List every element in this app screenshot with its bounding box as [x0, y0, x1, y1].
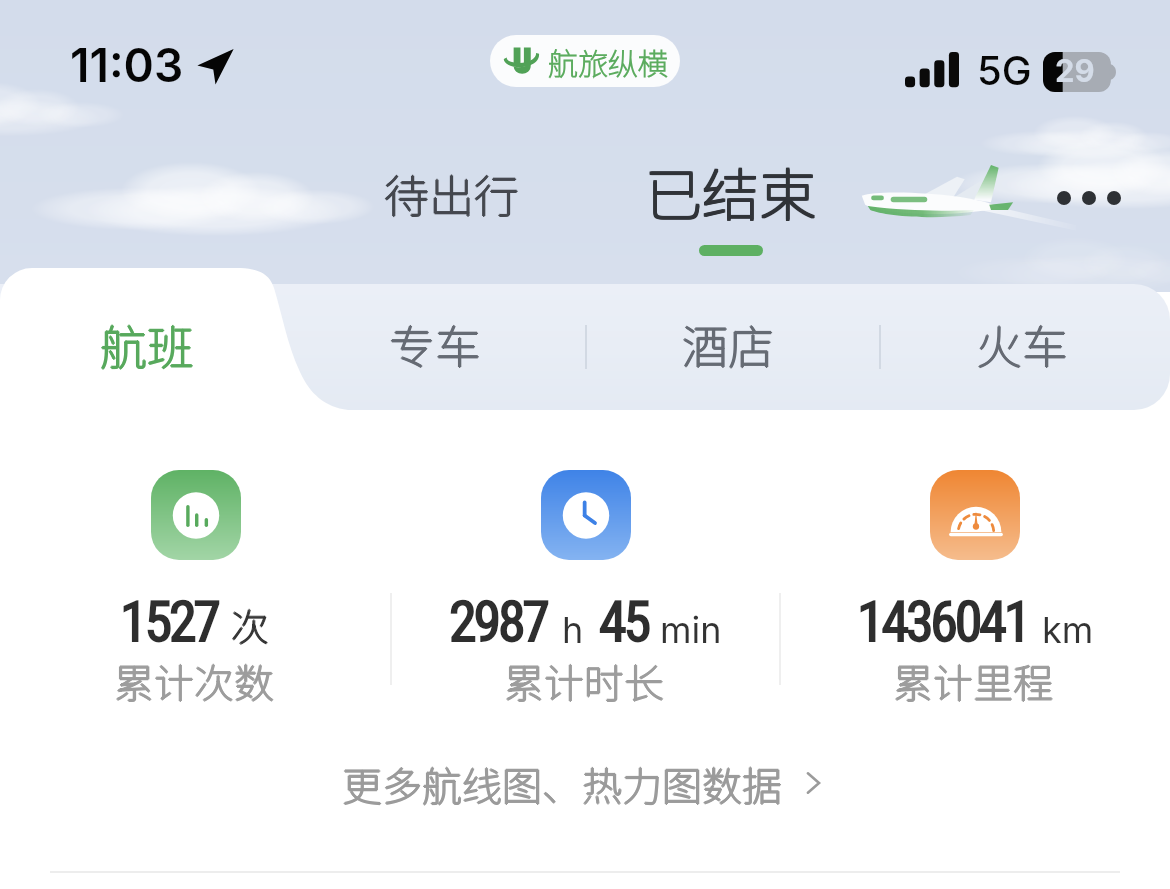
staticText: 待出行: [385, 161, 521, 226]
staticText: 2987: [449, 589, 547, 655]
staticText: 火车: [976, 310, 1068, 377]
staticText: 专车: [389, 310, 481, 377]
button[interactable]: 航旅纵横: [490, 35, 680, 87]
staticText: 酒店: [682, 311, 774, 378]
staticText: km: [1042, 608, 1094, 652]
staticText: 更多航线图、热力图数据: [343, 755, 783, 811]
button[interactable]: More options: [1043, 158, 1135, 248]
staticText: 火车: [976, 311, 1068, 378]
staticText: 已结束: [645, 151, 816, 234]
staticText: 5G: [977, 46, 1032, 94]
staticText: h: [562, 608, 584, 652]
staticText: 累计次数: [114, 652, 274, 710]
button[interactable]: 专车: [289, 281, 580, 407]
staticText: 累计里程: [893, 651, 1053, 709]
staticText: 累计里程: [894, 652, 1054, 710]
staticText: 航班: [99, 310, 193, 378]
staticText: 累计次数: [114, 651, 274, 709]
staticText: 航旅纵横: [548, 40, 668, 83]
button[interactable]: 累计里程 1436041 km: [780, 455, 1170, 710]
staticText: 酒店: [682, 310, 774, 377]
staticText: 待出行: [383, 161, 519, 226]
staticText: 已结束: [646, 151, 817, 234]
staticText: 航班: [101, 310, 195, 378]
staticText: 酒店: [683, 311, 775, 378]
staticText: 次: [231, 598, 270, 653]
staticText: 酒店: [682, 312, 774, 379]
staticText: 专车: [390, 311, 482, 378]
staticText: 更多航线图、热力图数据: [342, 754, 782, 810]
staticText: 次: [232, 597, 271, 652]
staticText: 累计次数: [115, 652, 275, 710]
button[interactable]: 航班: [0, 281, 294, 407]
staticText: 累计时长: [504, 651, 664, 709]
staticText: 已结束: [645, 150, 816, 233]
staticText: 更多航线图、热力图数据: [342, 756, 782, 812]
staticText: 累计时长: [505, 652, 665, 710]
button[interactable]: 待出行: [384, 161, 520, 226]
button[interactable]: 累计时长 2987 h 45 min: [391, 455, 779, 710]
staticText: 累计时长: [503, 652, 663, 710]
staticText: 累计时长: [504, 652, 664, 710]
staticText: 累计时长: [504, 653, 664, 711]
staticText: 已结束: [644, 151, 815, 234]
staticText: 次: [231, 596, 270, 651]
staticText: 火车: [976, 312, 1068, 379]
staticText: 已结束: [646, 149, 817, 232]
button[interactable]: 累计次数 1527 次: [0, 455, 390, 710]
staticText: 专车: [389, 312, 481, 379]
staticText: 火车: [975, 311, 1067, 378]
staticText: 已结束: [646, 150, 817, 233]
staticText: 航班: [100, 311, 194, 379]
staticText: 1436041: [857, 589, 1029, 655]
staticText: 次: [230, 597, 269, 652]
staticText: 更多航线图、热力图数据: [341, 755, 781, 811]
staticText: 专车: [389, 311, 481, 378]
staticText: 航班: [100, 309, 194, 377]
staticText: 累计里程: [893, 652, 1053, 710]
button[interactable]: 已结束: [645, 150, 816, 233]
button[interactable]: 酒店: [582, 281, 874, 407]
staticText: 29: [1055, 52, 1095, 90]
staticText: 累计里程: [893, 653, 1053, 711]
button[interactable]: 火车: [876, 281, 1167, 407]
staticText: 酒店: [681, 311, 773, 378]
staticText: 已结束: [645, 149, 816, 232]
staticText: 已结束: [644, 149, 815, 232]
staticText: 45: [599, 589, 648, 655]
staticText: 11:03: [70, 37, 184, 93]
staticText: 更多航线图、热力图数据: [342, 755, 782, 811]
staticText: 专车: [388, 311, 480, 378]
staticText: 待出行: [384, 162, 520, 227]
staticText: 已结束: [644, 150, 815, 233]
button[interactable]: 更多航线图、热力图数据: [322, 743, 852, 823]
staticText: 次: [231, 597, 270, 652]
staticText: 累计次数: [113, 652, 273, 710]
staticText: 1527: [120, 589, 218, 655]
staticText: 待出行: [384, 160, 520, 225]
staticText: 累计次数: [114, 653, 274, 711]
staticText: 航班: [100, 310, 194, 378]
staticText: min: [660, 608, 722, 652]
staticText: 累计里程: [892, 652, 1052, 710]
staticText: 火车: [977, 311, 1069, 378]
staticText: 待出行: [384, 161, 520, 226]
